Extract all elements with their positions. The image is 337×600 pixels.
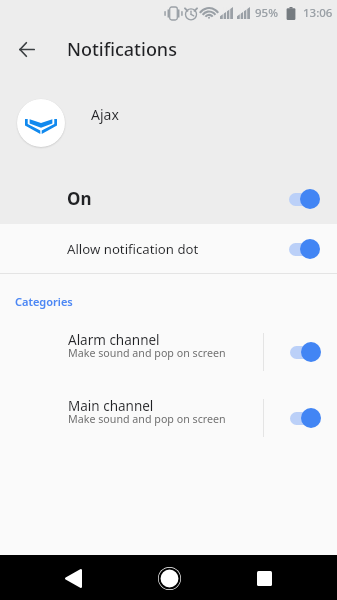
button[interactable]: Back xyxy=(10,34,42,66)
staticText: 95% xyxy=(255,5,278,21)
staticText: Make sound and pop on screen xyxy=(68,346,226,361)
button[interactable]: Recents xyxy=(242,556,286,600)
staticText: Notifications xyxy=(67,37,177,62)
staticText: Alarm channel xyxy=(68,331,160,349)
button[interactable]: On xyxy=(0,173,337,224)
staticText: Make sound and pop on screen xyxy=(68,412,226,427)
button[interactable]: Main channel xyxy=(0,380,337,446)
staticText: Ajax xyxy=(91,105,119,124)
button[interactable]: Allow notification dot xyxy=(0,224,337,273)
staticText: On xyxy=(67,187,92,210)
staticText: Main channel xyxy=(68,397,154,415)
button[interactable]: Back xyxy=(51,556,95,600)
staticText: Categories xyxy=(15,294,73,309)
button[interactable]: Alarm channel xyxy=(0,314,337,380)
staticText: Allow notification dot xyxy=(67,240,199,258)
button[interactable] xyxy=(264,314,337,380)
button[interactable]: Home xyxy=(147,556,191,600)
staticText: 13:06 xyxy=(303,5,333,21)
button[interactable] xyxy=(264,380,337,446)
